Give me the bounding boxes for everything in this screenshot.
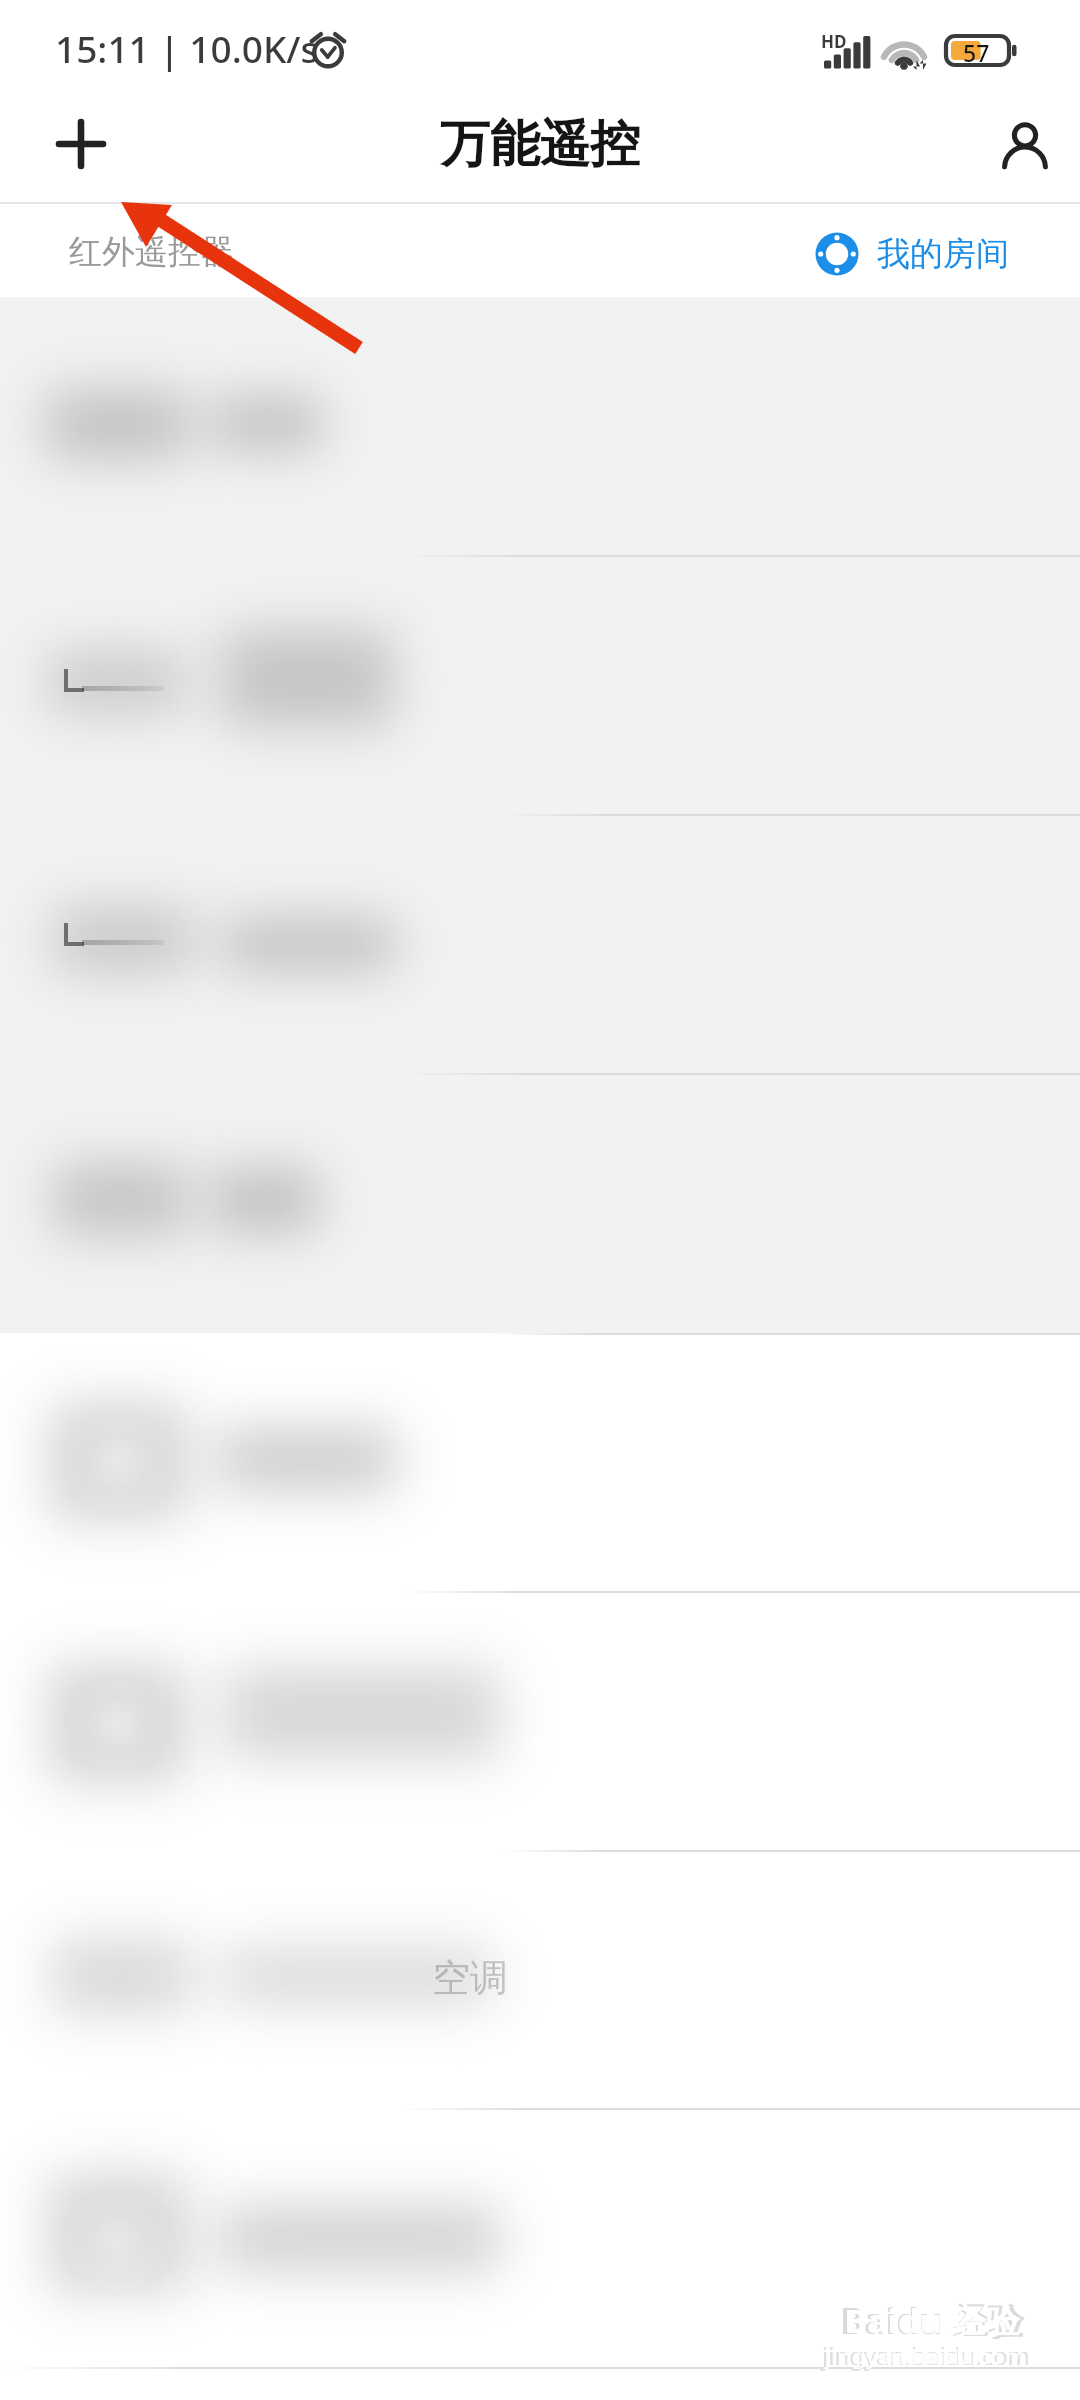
staticText: Baidu 经验 [840, 2296, 1024, 2345]
staticText: 万能遥控 [440, 113, 640, 176]
staticText: 15:11 | 10.0K/s [55, 23, 319, 73]
staticText: 我的房间 [877, 233, 1009, 275]
staticText: jingyan.baidu.com [825, 2341, 1027, 2370]
staticText: 红外遥控器 [69, 231, 234, 273]
button[interactable]: Add remote [36, 99, 126, 189]
staticText: HD [821, 30, 847, 53]
button[interactable]: Account [980, 99, 1070, 189]
staticText: jingyan.baidu.com [822, 2339, 1030, 2372]
staticText: 空调 [432, 1954, 508, 2002]
button[interactable]: 我的房间 [815, 232, 1009, 276]
staticText: 57 [963, 37, 990, 68]
staticText: Baidu 经验 [844, 2298, 1020, 2342]
